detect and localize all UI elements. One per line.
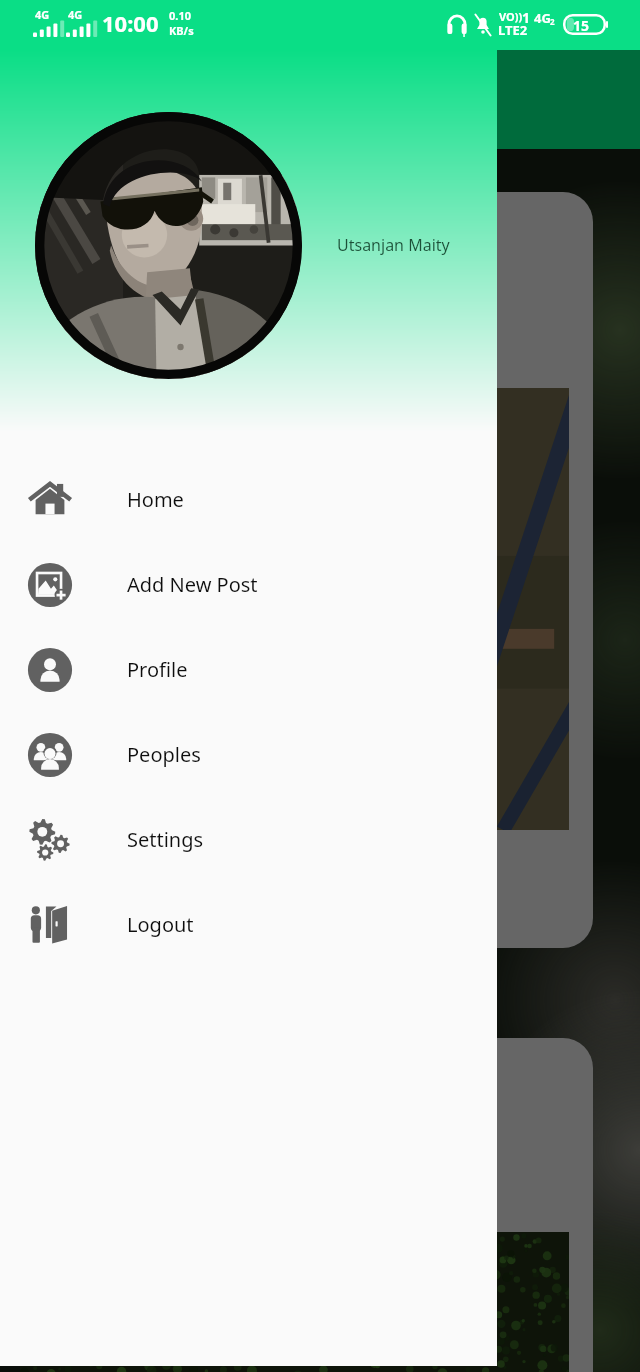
button[interactable]: Logout <box>0 882 497 967</box>
staticText: 15 <box>573 16 590 35</box>
button[interactable]: Peoples <box>0 712 497 797</box>
staticText: Logout <box>127 911 194 938</box>
staticText: Peoples <box>127 741 201 768</box>
staticText: 10:00 <box>102 8 159 38</box>
button[interactable]: Home <box>0 457 497 542</box>
staticText: 4G <box>35 7 50 22</box>
staticText: 0.10 <box>169 8 191 23</box>
staticText: LTE2 <box>498 21 528 39</box>
button[interactable]: Settings <box>0 797 497 882</box>
staticText: 2 <box>550 16 555 27</box>
staticText: 1 <box>522 8 531 27</box>
staticText: Home <box>127 486 184 513</box>
staticText: 4G <box>68 7 83 22</box>
staticText: Settings <box>127 826 204 853</box>
button[interactable]: Utsanjan Maity <box>337 234 450 256</box>
button[interactable]: Profile photo <box>35 112 302 379</box>
staticText: Add New Post <box>127 571 258 598</box>
button[interactable]: Profile <box>0 627 497 712</box>
staticText: 4G <box>534 9 551 27</box>
staticText: Profile <box>127 656 188 683</box>
staticText: VO)) <box>499 9 523 24</box>
staticText: KB/s <box>169 23 194 38</box>
button[interactable]: Add New Post <box>0 542 497 627</box>
